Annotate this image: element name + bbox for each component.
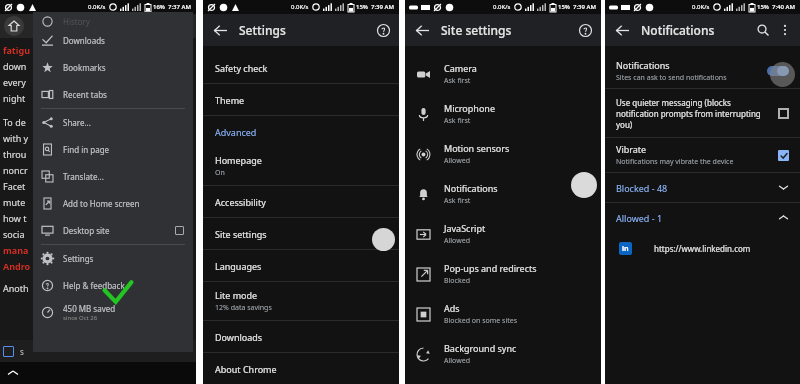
button[interactable]: History (33, 14, 193, 27)
staticText: Homepage (215, 154, 262, 166)
button[interactable]: Help (371, 18, 395, 42)
staticText: Add to Home screen (63, 198, 140, 209)
button[interactable]: Languages (203, 250, 399, 282)
button[interactable]: Pop-ups and redirects (405, 254, 601, 294)
staticText: Ask first (444, 76, 471, 86)
button[interactable]: Homepage (203, 147, 399, 186)
staticText: in (622, 244, 629, 254)
staticText: On (215, 168, 225, 178)
staticText: Vibrate (616, 143, 647, 155)
button[interactable]: Background sync (405, 334, 601, 374)
button[interactable]: Home (4, 16, 24, 36)
staticText: Andro (3, 260, 31, 272)
staticText: since Oct 26 (63, 314, 98, 322)
staticText: Blocked (444, 276, 470, 286)
staticText: 12% data savings (215, 303, 272, 313)
staticText: night (3, 92, 26, 104)
staticText: Allowed (444, 236, 470, 246)
button[interactable]: Motion sensors (405, 134, 601, 174)
staticText: Ads (444, 302, 460, 314)
button[interactable]: Share... (33, 109, 193, 136)
staticText: Downloads (63, 35, 105, 46)
staticText: Background sync (444, 342, 517, 354)
button[interactable]: Find in page (33, 136, 193, 163)
staticText: Notifications may vibrate the device (616, 157, 734, 167)
button[interactable]: 450 MB saved (33, 299, 193, 326)
staticText: Theme (215, 94, 245, 106)
button[interactable]: Add to Home screen (33, 190, 193, 217)
button[interactable]: Search (752, 19, 774, 41)
button[interactable]: Site settings (203, 218, 399, 250)
button[interactable]: Theme (203, 84, 399, 116)
staticText: Desktop site (63, 225, 110, 236)
staticText: About Chrome (215, 363, 277, 375)
button[interactable]: Notifications (405, 174, 601, 214)
button[interactable]: Help & feedback (33, 272, 193, 299)
button[interactable]: Settings (33, 245, 193, 272)
staticText: Accessibility (215, 196, 266, 208)
button[interactable]: Back (209, 19, 231, 41)
staticText: Anoth (3, 282, 29, 294)
button[interactable]: Use quieter messaging (blocks notificati… (605, 89, 800, 137)
staticText: 450 MB saved (63, 303, 116, 314)
button[interactable]: Desktop site (33, 217, 193, 244)
staticText: Recent tabs (63, 89, 107, 100)
button[interactable]: Camera (405, 54, 601, 94)
button[interactable]: in (605, 232, 800, 264)
staticText: Blocked on some sites (444, 316, 518, 326)
button[interactable]: Back (411, 19, 433, 41)
staticText: every (3, 76, 26, 88)
staticText: Ask first (444, 116, 471, 126)
staticText: Share... (63, 117, 91, 128)
staticText: Camera (444, 62, 477, 74)
staticText: Pop-ups and redirects (444, 262, 537, 274)
staticText: 16% (153, 3, 165, 11)
staticText: Translate... (63, 171, 104, 182)
staticText: Allowed (444, 356, 470, 366)
staticText: 7:39 AM (573, 3, 596, 11)
button[interactable]: Blocked - 48 (605, 173, 800, 202)
staticText: 0.0K/s (88, 3, 106, 11)
staticText: Languages (215, 260, 262, 272)
staticText: Microphone (444, 102, 495, 114)
button[interactable]: JavaScript (405, 214, 601, 254)
button[interactable]: Microphone (405, 94, 601, 134)
staticText: socia (3, 228, 25, 240)
staticText: mana (3, 244, 29, 256)
button[interactable]: Allowed - 1 (605, 203, 800, 232)
staticText: Notifications (444, 182, 498, 194)
staticText: mute (3, 196, 26, 208)
button[interactable]: Ads (405, 294, 601, 334)
button[interactable]: Accessibility (203, 186, 399, 218)
button[interactable]: Lite mode (203, 282, 399, 321)
staticText: https://www.linkedin.com (654, 243, 751, 254)
button[interactable]: More options (774, 19, 796, 41)
button[interactable]: Help (573, 18, 597, 42)
staticText: JavaScript (444, 222, 486, 234)
staticText: 0.0K/s (291, 3, 309, 11)
button[interactable]: Vibrate (605, 138, 800, 172)
button[interactable]: Notifications (605, 54, 800, 88)
button[interactable]: Bookmarks (33, 54, 193, 81)
staticText: Allowed - 1 (616, 212, 778, 224)
staticText: down (3, 60, 27, 72)
button[interactable]: About Chrome (203, 353, 399, 384)
staticText: Use quieter messaging (blocks notificati… (616, 97, 768, 130)
staticText: Safety check (215, 62, 268, 74)
staticText: To de (3, 116, 26, 128)
button[interactable]: Recent tabs (33, 81, 193, 108)
staticText: noncr (3, 164, 28, 176)
button[interactable]: Downloads (33, 27, 193, 54)
staticText: Facet (3, 180, 26, 192)
staticText: Settings (63, 253, 94, 264)
staticText: 7:37 AM (168, 3, 191, 11)
staticText: Ask first (444, 196, 471, 206)
staticText: Settings (239, 22, 286, 38)
staticText: Notifications (641, 22, 715, 38)
button[interactable]: Back (611, 19, 633, 41)
button[interactable]: Advanced (203, 116, 399, 147)
staticText: 0.0K/s (692, 3, 710, 11)
button[interactable]: Translate... (33, 163, 193, 190)
button[interactable]: Downloads (203, 321, 399, 353)
button[interactable]: Safety check (203, 52, 399, 84)
